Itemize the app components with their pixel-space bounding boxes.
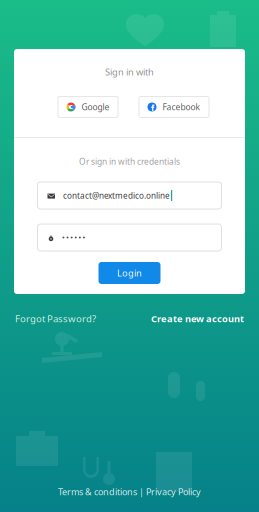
button[interactable]: Terms & conditions | Privacy Policy bbox=[58, 486, 201, 498]
staticText: Facebook bbox=[162, 101, 200, 113]
button[interactable]: Google bbox=[58, 96, 118, 117]
staticText: Sign in with bbox=[105, 66, 154, 78]
staticText: Forgot Password? bbox=[15, 312, 96, 325]
staticText: Google bbox=[81, 101, 109, 113]
button[interactable]: Login bbox=[98, 262, 160, 284]
staticText: Terms & conditions | Privacy Policy bbox=[58, 486, 201, 498]
staticText: Login bbox=[117, 267, 142, 279]
staticText: Create new account bbox=[151, 312, 244, 325]
button[interactable]: Facebook bbox=[139, 96, 209, 117]
button[interactable]: Create new account bbox=[151, 312, 244, 325]
staticText: Or sign in with credentials bbox=[79, 156, 180, 167]
button[interactable]: Forgot Password? bbox=[15, 312, 96, 325]
staticText: contact@nextmedico.online bbox=[63, 190, 170, 201]
